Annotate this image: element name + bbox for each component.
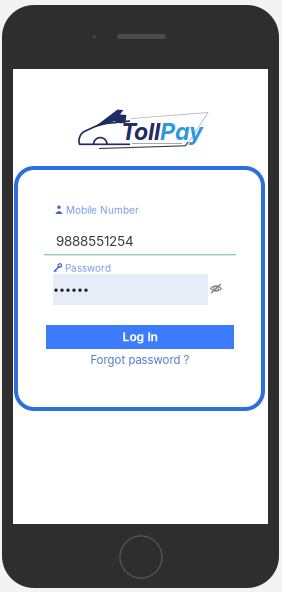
button[interactable]: Show password [207, 280, 225, 297]
staticText: •••••• [53, 283, 89, 296]
staticText: Toll [121, 117, 160, 146]
staticText: Forgot password ? [90, 353, 189, 367]
button[interactable]: Forgot password ? [46, 353, 234, 367]
button[interactable]: Log In [46, 325, 234, 349]
staticText: Mobile Number [66, 204, 139, 216]
staticText: 9888551254 [56, 233, 134, 249]
staticText: Pay [160, 117, 203, 146]
staticText: Password [65, 262, 111, 274]
staticText: Log In [122, 330, 157, 344]
